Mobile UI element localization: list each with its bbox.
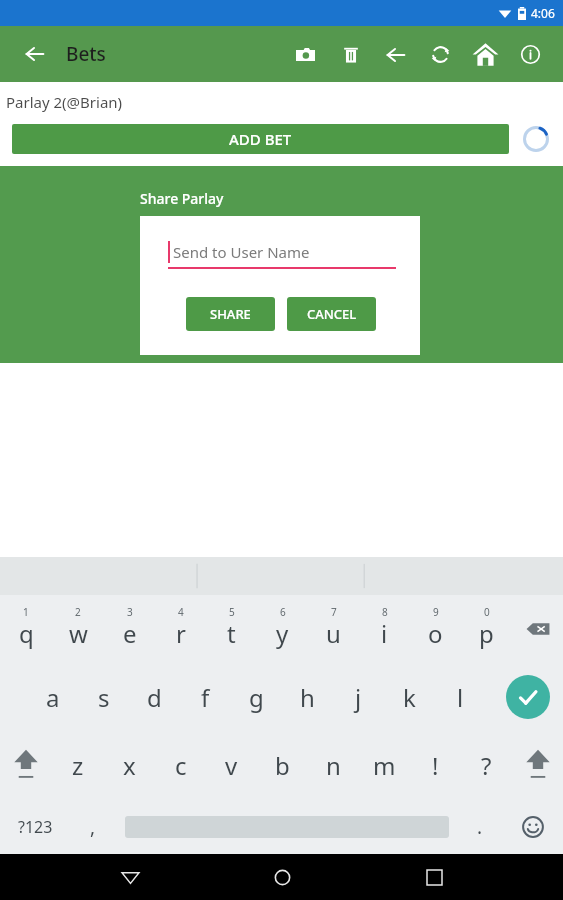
button[interactable]: .	[457, 799, 503, 854]
staticText: x	[123, 749, 136, 782]
staticText: e	[123, 617, 137, 650]
button[interactable]: Space	[116, 799, 457, 854]
staticText: 4	[178, 605, 184, 619]
staticText: 2	[75, 605, 81, 619]
button[interactable]: ADD BET	[12, 124, 509, 154]
staticText: j	[355, 681, 362, 714]
staticText: Bets	[66, 41, 106, 67]
button[interactable]: k	[384, 663, 435, 731]
staticText: c	[175, 749, 187, 782]
staticText: ?	[481, 749, 492, 782]
button[interactable]: b	[257, 731, 308, 799]
staticText: y	[276, 617, 289, 650]
staticText: Share Parlay	[140, 189, 224, 208]
button[interactable]: Camera	[283, 32, 328, 77]
button[interactable]: m	[359, 731, 410, 799]
staticText: i	[381, 617, 388, 650]
staticText: h	[300, 681, 315, 714]
button[interactable]: ?123	[0, 799, 70, 854]
staticText: a	[46, 681, 60, 714]
staticText: k	[403, 681, 416, 714]
staticText: m	[373, 749, 396, 782]
staticText: s	[98, 681, 110, 714]
button[interactable]: ?	[461, 731, 512, 799]
staticText: v	[225, 749, 238, 782]
button[interactable]: Recents	[411, 854, 457, 900]
button[interactable]: l	[435, 663, 486, 731]
staticText: !	[432, 749, 439, 782]
staticText: r	[176, 617, 186, 650]
button[interactable]: Info	[508, 32, 553, 77]
button[interactable]: Shift	[512, 731, 563, 799]
button[interactable]: g	[231, 663, 282, 731]
button[interactable]: f	[180, 663, 231, 731]
staticText: ?123	[18, 816, 53, 838]
button[interactable]: d	[129, 663, 180, 731]
button[interactable]: 0	[461, 595, 512, 663]
button[interactable]: j	[333, 663, 384, 731]
staticText: 4:06	[531, 5, 555, 21]
button[interactable]: n	[308, 731, 359, 799]
staticText: n	[326, 749, 341, 782]
staticText: 3	[127, 605, 133, 619]
staticText: t	[227, 617, 236, 650]
button[interactable]: s	[78, 663, 129, 731]
button[interactable]: h	[282, 663, 333, 731]
staticText: Send to User Name	[173, 242, 310, 262]
staticText: 0	[484, 605, 490, 619]
staticText: u	[326, 617, 341, 650]
button[interactable]: CANCEL	[287, 297, 376, 331]
staticText: 5	[229, 605, 235, 619]
staticText: ,	[90, 814, 96, 840]
staticText: q	[19, 617, 34, 650]
staticText: .	[477, 814, 483, 840]
staticText: p	[479, 617, 494, 650]
staticText: z	[72, 749, 84, 782]
button[interactable]: z	[52, 731, 104, 799]
button[interactable]: Back	[373, 32, 418, 77]
button[interactable]: Enter	[492, 663, 563, 731]
button[interactable]: Home	[259, 854, 305, 900]
staticText: w	[69, 617, 88, 650]
staticText: Parlay 2(@Brian)	[6, 92, 123, 112]
button[interactable]: 4	[155, 595, 206, 663]
staticText: 6	[280, 605, 286, 619]
button[interactable]: Refresh	[418, 32, 463, 77]
button[interactable]: Backspace	[512, 595, 563, 663]
button[interactable]: Back	[18, 37, 52, 71]
staticText: 8	[382, 605, 388, 619]
button[interactable]: x	[104, 731, 155, 799]
button[interactable]: 1	[0, 595, 52, 663]
button[interactable]: 8	[359, 595, 410, 663]
button[interactable]: SHARE	[186, 297, 275, 331]
button[interactable]: Shift	[0, 731, 52, 799]
button[interactable]: Emoji	[503, 799, 563, 854]
staticText: b	[275, 749, 290, 782]
button[interactable]: Delete	[328, 32, 373, 77]
button[interactable]: 2	[52, 595, 104, 663]
button[interactable]: 3	[104, 595, 155, 663]
staticText: o	[428, 617, 443, 650]
button[interactable]: v	[206, 731, 257, 799]
staticText: 9	[433, 605, 439, 619]
button[interactable]: 9	[410, 595, 461, 663]
button[interactable]: ,	[70, 799, 116, 854]
staticText: f	[201, 681, 210, 714]
staticText: SHARE	[210, 305, 251, 323]
button[interactable]: 5	[206, 595, 257, 663]
button[interactable]: !	[410, 731, 461, 799]
button[interactable]: 7	[308, 595, 359, 663]
staticText: 7	[331, 605, 337, 619]
staticText: d	[147, 681, 162, 714]
button[interactable]: 6	[257, 595, 308, 663]
button[interactable]: c	[155, 731, 206, 799]
staticText: CANCEL	[307, 305, 357, 323]
staticText: 1	[23, 605, 29, 619]
staticText: g	[249, 681, 264, 714]
staticText: l	[457, 681, 464, 714]
button[interactable]: Home	[463, 32, 508, 77]
button[interactable]: a	[27, 663, 78, 731]
button[interactable]: Back	[107, 854, 153, 900]
staticText: ADD BET	[229, 129, 292, 149]
